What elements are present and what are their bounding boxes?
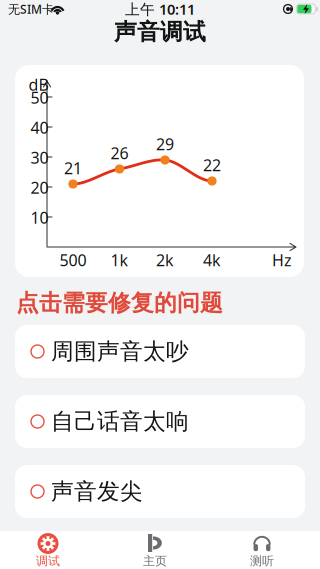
staticText: 主页 [143, 554, 167, 568]
staticText: dB [28, 74, 48, 95]
staticText: 50 [30, 87, 48, 108]
staticText: 自己话音太响 [51, 408, 189, 435]
staticText: Hz [272, 249, 292, 271]
staticText: 1k [110, 249, 128, 271]
staticText: 30 [30, 147, 48, 168]
staticText: 21 [64, 157, 82, 179]
button[interactable]: 自己话音太响 [15, 395, 305, 448]
staticText: 调试 [36, 554, 60, 568]
staticText: 无SIM卡 [8, 1, 54, 17]
staticText: 10 [30, 207, 48, 228]
staticText: 声音调试 [114, 18, 206, 46]
button[interactable]: 声音发尖 [15, 465, 305, 518]
staticText: 4k [203, 249, 221, 271]
button[interactable]: 测听 [240, 531, 284, 569]
staticText: 20 [30, 177, 48, 198]
button[interactable]: 调试 [26, 531, 70, 569]
staticText: 40 [30, 117, 48, 138]
staticText: 测听 [250, 554, 274, 568]
staticText: 22 [203, 154, 221, 176]
staticText: 周围声音太吵 [51, 338, 189, 365]
staticText: 声音发尖 [51, 478, 143, 505]
staticText: 点击需要修复的问题 [16, 289, 223, 317]
button[interactable]: 周围声音太吵 [15, 325, 305, 378]
staticText: 2k [156, 249, 174, 271]
staticText: 26 [110, 142, 128, 164]
staticText: 500 [59, 249, 86, 271]
staticText: 上午 10:11 [125, 0, 195, 19]
staticText: 29 [156, 133, 174, 155]
button[interactable]: 主页 [133, 531, 177, 569]
